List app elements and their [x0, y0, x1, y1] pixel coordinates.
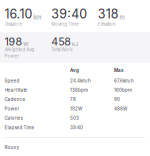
staticText: Moving Time: [51, 21, 79, 27]
staticText: Distance: [5, 21, 23, 27]
staticText: km: [33, 14, 41, 21]
staticText: 78: [70, 97, 76, 102]
staticText: 90: [114, 97, 120, 102]
staticText: 67.6km/h: [114, 78, 134, 83]
staticText: Cadence: [5, 97, 26, 102]
staticText: Power: [5, 106, 20, 111]
staticText: Avg: [70, 68, 79, 73]
staticText: m: [119, 14, 124, 21]
staticText: Rouvy: [5, 145, 20, 150]
staticText: Elevation: [98, 21, 116, 27]
staticText: Heart Rate: [5, 87, 28, 93]
staticText: 198: [5, 35, 23, 48]
staticText: Speed: [5, 78, 20, 83]
staticText: 24.4km/h: [70, 78, 91, 83]
staticText: kJ: [72, 41, 78, 47]
staticText: Elapsed Time: [5, 125, 35, 130]
staticText: 16.10: [5, 7, 33, 22]
staticText: Weighted Avg: [5, 47, 35, 52]
staticText: 136bpm: [70, 87, 88, 93]
staticText: 318: [98, 7, 119, 22]
staticText: 160bpm: [114, 87, 132, 93]
staticText: W: [23, 41, 28, 47]
staticText: 192W: [70, 106, 82, 111]
staticText: Power: [5, 53, 20, 59]
staticText: 503: [70, 115, 79, 121]
staticText: 458: [51, 35, 71, 48]
staticText: 488W: [114, 106, 127, 111]
staticText: Max: [114, 68, 124, 73]
staticText: Total Work: [51, 47, 72, 52]
staticText: 39:40: [70, 125, 83, 130]
staticText: 39:40: [51, 7, 87, 22]
staticText: Calories: [5, 115, 23, 121]
